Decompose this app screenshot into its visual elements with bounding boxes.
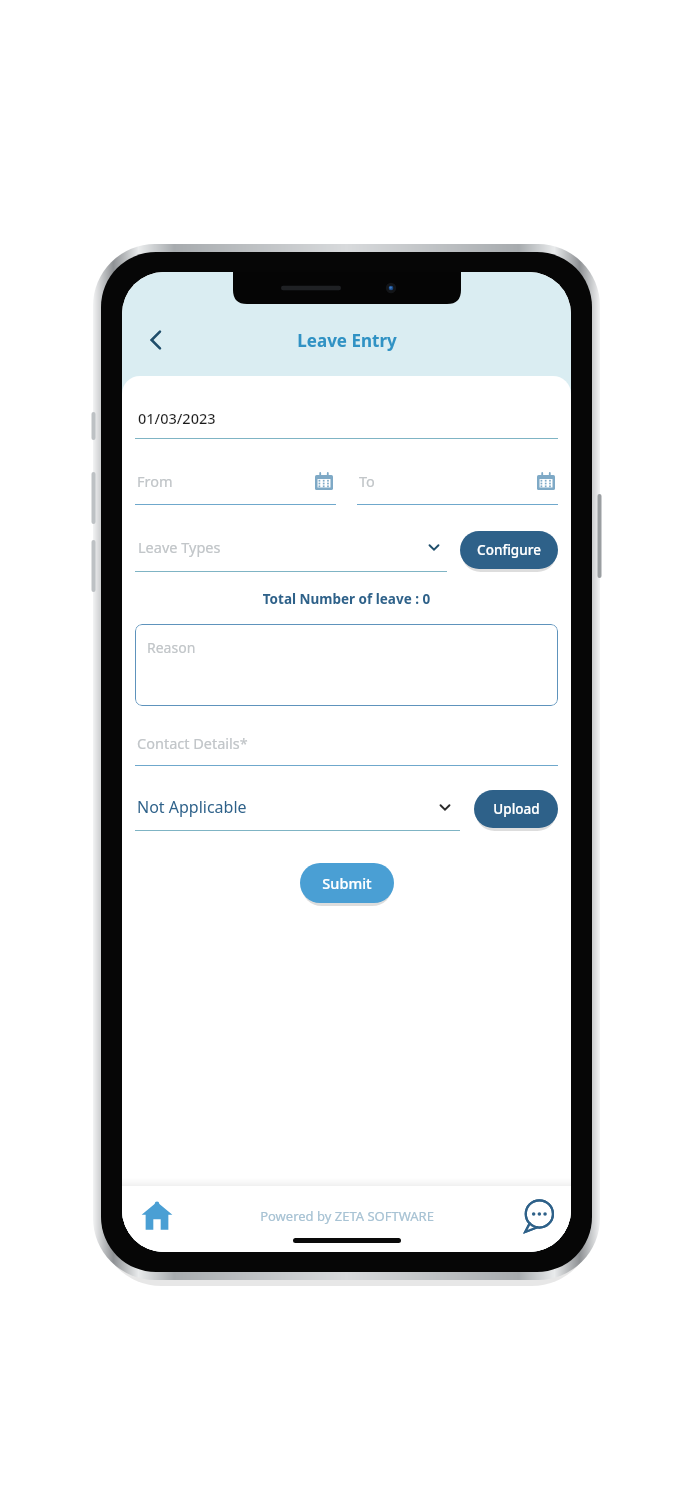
button[interactable]: From bbox=[135, 465, 336, 505]
staticText: Powered by ZETA SOFTWARE bbox=[260, 1207, 434, 1225]
staticText: Contact Details* bbox=[137, 733, 248, 753]
staticText: Reason bbox=[147, 638, 196, 657]
button[interactable]: Contact Details* bbox=[135, 730, 558, 766]
staticText: Upload bbox=[493, 800, 540, 818]
staticText: Leave Entry bbox=[297, 329, 397, 352]
staticText: To bbox=[359, 471, 537, 491]
button[interactable]: Back bbox=[134, 318, 178, 362]
staticText: Not Applicable bbox=[137, 796, 438, 818]
staticText: Submit bbox=[322, 873, 372, 893]
button[interactable]: Configure bbox=[460, 531, 558, 569]
staticText: Configure bbox=[477, 541, 541, 559]
other: Pick date bbox=[537, 472, 555, 490]
staticText: Leave Types bbox=[138, 537, 427, 557]
button[interactable]: Chat support bbox=[515, 1193, 561, 1239]
button[interactable]: Not Applicable bbox=[135, 791, 460, 831]
staticText: From bbox=[137, 471, 315, 491]
button[interactable]: Submit bbox=[300, 863, 394, 903]
button[interactable]: Home bbox=[134, 1193, 180, 1239]
staticText: Total Number of leave : 0 bbox=[135, 590, 558, 608]
button[interactable]: Leave Types bbox=[135, 531, 447, 572]
button[interactable]: To bbox=[357, 465, 558, 505]
staticText: 01/03/2023 bbox=[138, 408, 216, 428]
button[interactable]: Reason bbox=[135, 624, 558, 706]
button[interactable]: Upload bbox=[474, 790, 558, 828]
other: Pick date bbox=[315, 472, 333, 490]
